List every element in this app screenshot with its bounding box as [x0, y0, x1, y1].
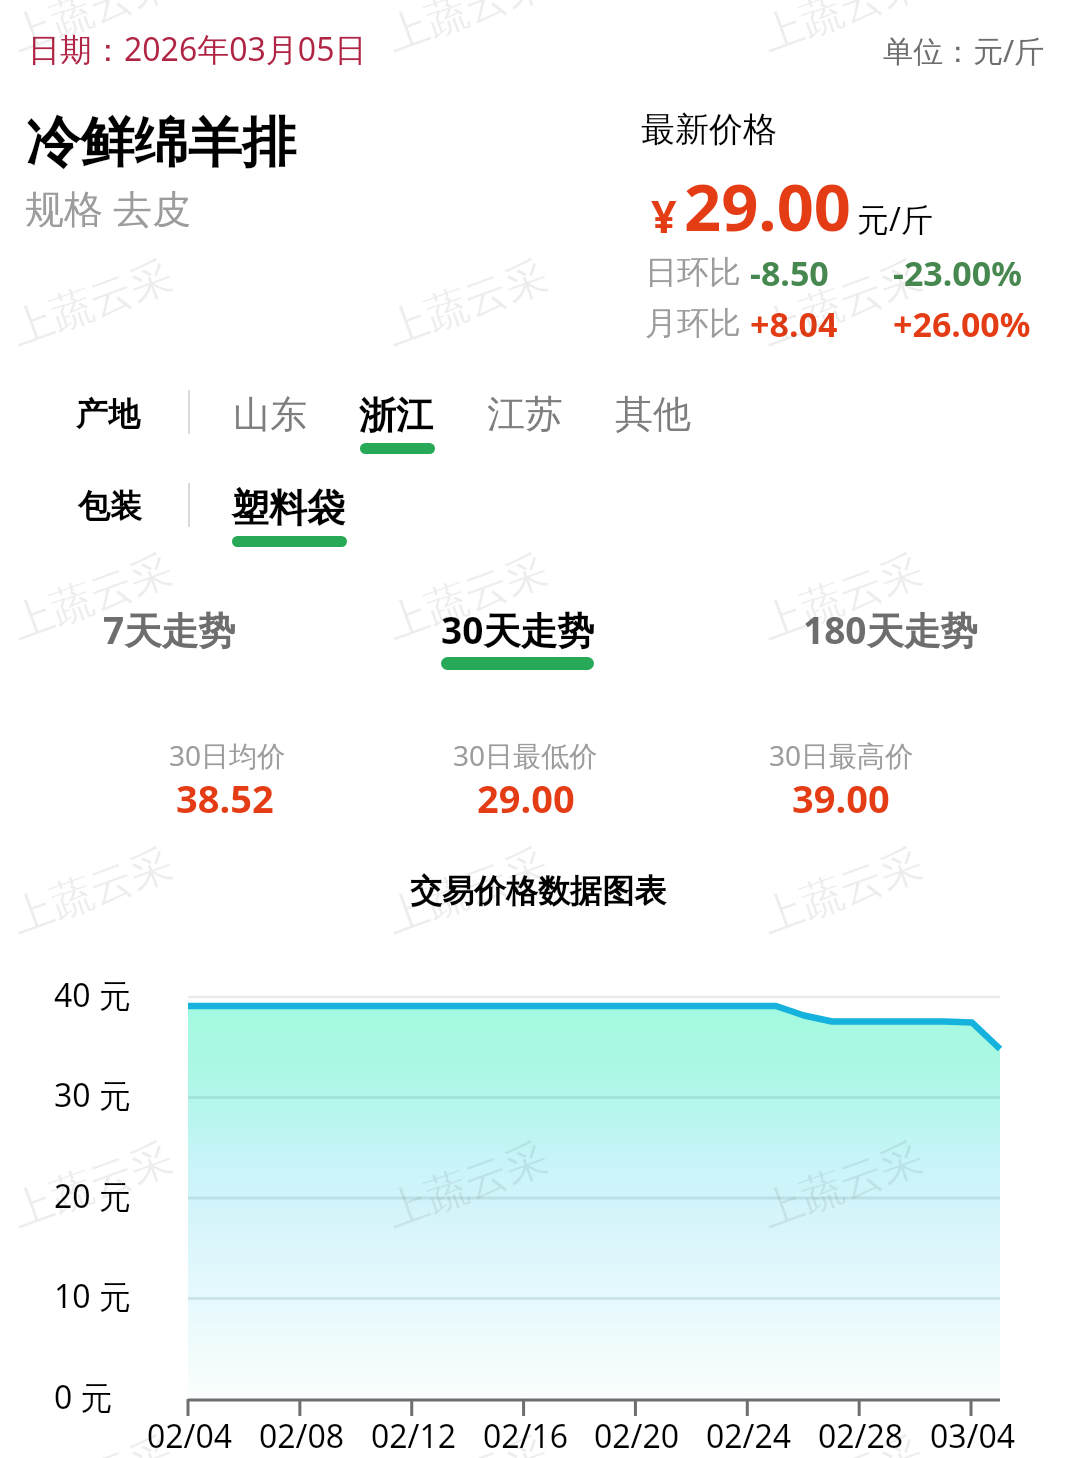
staticText: 10 元 [54, 1274, 131, 1318]
staticText: 29.00 [684, 162, 851, 251]
staticText: 单位：元/斤 [883, 30, 1045, 71]
staticText: 上蔬云采 [379, 838, 555, 945]
staticText: +26.00% [893, 301, 1031, 347]
staticText: 上蔬云采 [754, 1132, 930, 1239]
staticText: 上蔬云采 [4, 838, 180, 945]
staticText: 上蔬云采 [754, 544, 930, 651]
button[interactable]: 塑料袋 [219, 468, 357, 552]
staticText: 上蔬云采 [4, 250, 180, 357]
staticText: 元/斤 [857, 197, 933, 241]
button[interactable]: 180天走势 [779, 576, 1002, 695]
staticText: 30日最低价 [453, 736, 598, 774]
staticText: 30天走势 [441, 604, 595, 655]
button[interactable]: 江苏 [475, 374, 575, 458]
staticText: 180天走势 [803, 604, 978, 655]
staticText: 29.00 [477, 772, 575, 824]
staticText: 上蔬云采 [379, 1132, 555, 1239]
staticText: 上蔬云采 [754, 838, 930, 945]
staticText: 30日均价 [169, 736, 286, 774]
button[interactable]: 7天走势 [79, 576, 260, 695]
staticText: 上蔬云采 [379, 1426, 555, 1458]
staticText: 塑料袋 [231, 484, 345, 532]
staticText: 日环比 [645, 252, 741, 292]
staticText: -8.50 [750, 250, 829, 296]
staticText: 包装 [78, 486, 142, 526]
button[interactable]: 山东 [221, 375, 319, 458]
staticText: 39.00 [792, 772, 890, 824]
staticText: 上蔬云采 [4, 1132, 180, 1239]
staticText: 上蔬云采 [754, 1426, 930, 1458]
staticText: 02/20 [594, 1414, 680, 1458]
staticText: 上蔬云采 [379, 250, 555, 357]
staticText: 冷鲜绵羊排 [26, 109, 296, 177]
staticText: 上蔬云采 [4, 1426, 180, 1458]
staticText: 02/16 [483, 1414, 569, 1458]
staticText: ¥ [651, 185, 677, 246]
staticText: 山东 [233, 391, 307, 438]
staticText: 其他 [615, 390, 691, 438]
staticText: 日期：2026年03月05日 [28, 27, 367, 71]
button[interactable]: 浙江 [347, 376, 445, 459]
staticText: 月环比 [645, 303, 741, 343]
staticText: 0 元 [54, 1375, 113, 1419]
staticText: 02/28 [818, 1414, 904, 1458]
staticText: 浙江 [359, 392, 433, 439]
staticText: 02/24 [706, 1414, 792, 1458]
staticText: 最新价格 [641, 108, 777, 151]
staticText: 交易价格数据图表 [410, 871, 666, 911]
staticText: 江苏 [487, 390, 563, 438]
staticText: 上蔬云采 [4, 0, 180, 63]
staticText: 30 元 [54, 1073, 131, 1117]
staticText: 上蔬云采 [379, 544, 555, 651]
staticText: 30日最高价 [769, 736, 914, 774]
staticText: 02/12 [371, 1414, 457, 1458]
staticText: 上蔬云采 [4, 544, 180, 651]
staticText: -23.00% [893, 250, 1022, 296]
button[interactable]: 其他 [603, 374, 703, 458]
staticText: +8.04 [750, 301, 838, 347]
staticText: 上蔬云采 [379, 0, 555, 63]
staticText: 产地 [76, 394, 140, 434]
staticText: 38.52 [176, 772, 274, 824]
staticText: 03/04 [930, 1414, 1016, 1458]
button[interactable]: 30天走势 [417, 576, 619, 695]
staticText: 02/04 [147, 1414, 233, 1458]
staticText: 规格 去皮 [25, 181, 192, 234]
staticText: 上蔬云采 [754, 250, 930, 357]
staticText: 40 元 [54, 973, 131, 1017]
staticText: 7天走势 [103, 604, 236, 655]
staticText: 20 元 [54, 1174, 131, 1218]
staticText: 02/08 [259, 1414, 345, 1458]
staticText: 上蔬云采 [754, 0, 930, 63]
